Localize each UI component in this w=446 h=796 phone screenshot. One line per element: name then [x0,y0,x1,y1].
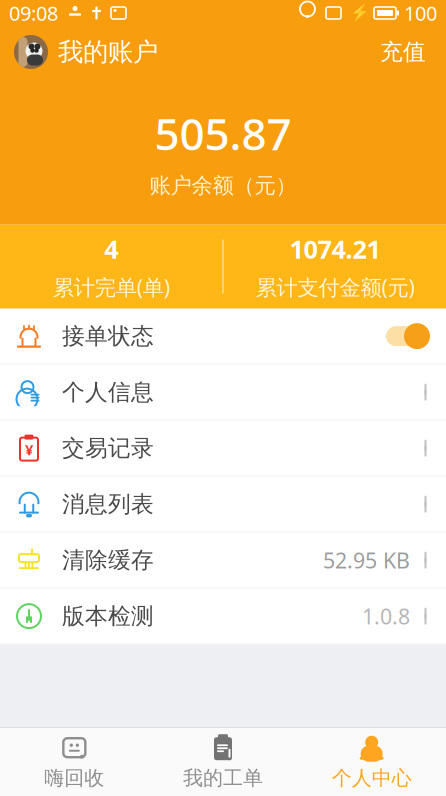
button[interactable]: 充值 [374,32,432,72]
staticText: 个人信息 [62,378,154,406]
staticText: 充值 [380,38,426,66]
button[interactable]: 嗨回收 [0,726,149,796]
staticText: ⚡ [350,4,370,22]
button[interactable]: 个人信息 [0,365,446,421]
staticText: 我的工单 [183,766,263,790]
staticText: 09:08 [9,0,58,26]
staticText: 嗨回收 [44,766,104,790]
staticText: 版本检测 [62,602,154,630]
staticText: 1074.21 [289,232,380,266]
button[interactable]: 个人中心 [297,726,446,796]
staticText: 4 [104,232,118,266]
staticText: 交易记录 [62,434,154,462]
staticText: 52.95 KB [323,546,410,574]
staticText: 账户余额（元） [149,172,296,199]
staticText: 1.0.8 [362,602,410,630]
staticText: ¥ [25,440,33,459]
staticText: 接单状态 [62,322,154,350]
staticText: 我的账户 [58,36,158,67]
staticText: 清除缓存 [62,546,154,574]
staticText: 100 [404,0,437,26]
button[interactable]: 接单状态 [0,309,446,365]
button[interactable]: 我的工单 [149,726,297,796]
staticText: 505.87 [154,104,291,162]
button[interactable]: 我的账户 [14,35,158,69]
staticText: 个人中心 [332,766,412,790]
staticText: 累计完单(单) [53,273,170,301]
button[interactable]: 清除缓存 [0,533,446,589]
staticText: 消息列表 [62,490,154,518]
button[interactable]: 消息列表 [0,477,446,533]
staticText: 累计支付金额(元) [255,273,414,301]
button[interactable]: 版本检测 [0,589,446,645]
button[interactable]: 接单状态开关 [384,321,432,351]
button[interactable]: ¥ [0,421,446,477]
